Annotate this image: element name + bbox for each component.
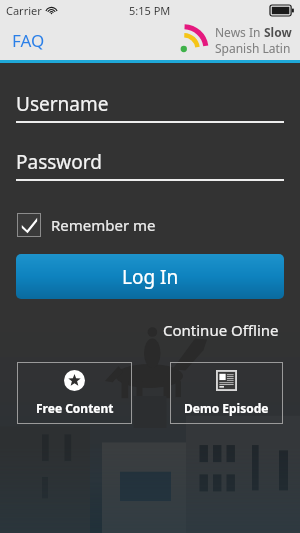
staticText: 5:15 PM: [129, 3, 171, 18]
staticText: Continue Offline: [163, 320, 279, 340]
staticText: Username: [16, 91, 109, 117]
button[interactable]: Log In: [16, 254, 284, 299]
staticText: Remember me: [51, 215, 156, 235]
button[interactable]: Continue Offline: [159, 316, 283, 344]
button[interactable]: Demo Episode: [170, 362, 283, 424]
button[interactable]: Remember me: [17, 211, 164, 239]
staticText: News In: [215, 24, 264, 40]
staticText: Demo Episode: [184, 400, 269, 416]
staticText: FAQ: [12, 29, 45, 52]
other: Logo: [179, 25, 209, 55]
staticText: Free Content: [36, 400, 114, 416]
staticText: Log In: [122, 264, 179, 290]
staticText: Spanish Latin: [215, 40, 291, 56]
staticText: Carrier: [6, 3, 42, 18]
staticText: Slow: [264, 24, 292, 40]
staticText: Password: [16, 149, 102, 175]
button[interactable]: FAQ: [4, 23, 53, 58]
button[interactable]: Free Content: [17, 362, 132, 424]
